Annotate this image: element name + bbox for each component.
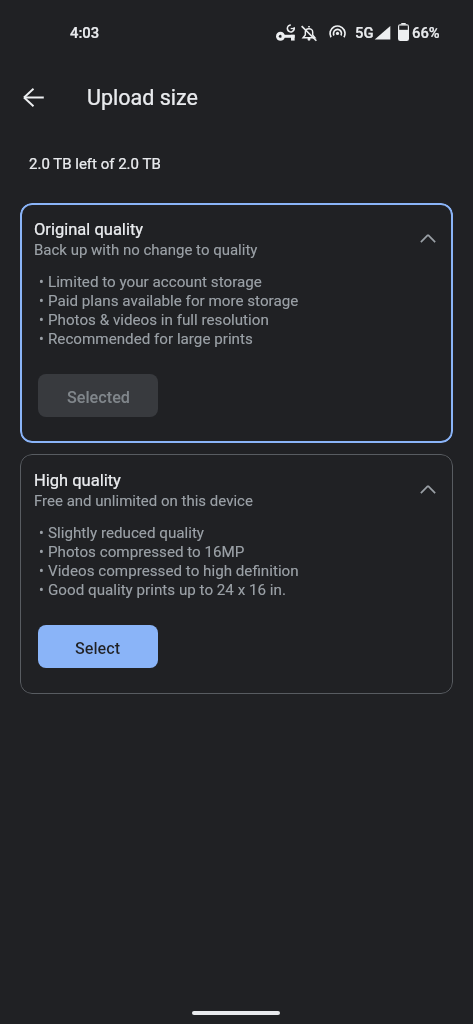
staticText: Photos compressed to 16MP	[48, 543, 245, 561]
staticText: •	[39, 525, 44, 541]
staticText: Videos compressed to high definition	[48, 562, 299, 580]
staticText: Good quality prints up to 24 x 16 in.	[48, 581, 286, 599]
staticText: Paid plans available for more storage	[48, 292, 299, 310]
staticText: Back up with no change to quality	[34, 241, 258, 259]
button[interactable]: Back	[12, 76, 55, 119]
staticText: •	[39, 563, 44, 579]
staticText: Selected	[67, 388, 130, 407]
staticText: 4:03	[70, 24, 100, 41]
staticText: 66%	[412, 24, 440, 41]
staticText: Limited to your account storage	[48, 273, 262, 291]
staticText: Photos & videos in full resolution	[48, 311, 269, 329]
staticText: •	[39, 582, 44, 598]
staticText: •	[39, 312, 44, 328]
staticText: •	[39, 544, 44, 560]
staticText: Recommended for large prints	[48, 330, 253, 348]
staticText: •	[39, 293, 44, 309]
staticText: •	[39, 331, 44, 347]
button[interactable]: Original quality	[20, 203, 453, 443]
staticText: 5G	[355, 24, 374, 41]
staticText: Free and unlimited on this device	[34, 492, 253, 510]
staticText: High quality	[34, 471, 121, 490]
staticText: Upload size	[87, 85, 198, 110]
button[interactable]: Collapse	[412, 473, 444, 505]
staticText: Original quality	[34, 220, 144, 239]
button[interactable]: Selected	[38, 374, 158, 417]
button[interactable]: High quality	[20, 454, 453, 694]
button[interactable]: Select	[38, 625, 158, 668]
staticText: 2.0 TB left of 2.0 TB	[29, 155, 161, 173]
staticText: •	[39, 274, 44, 290]
staticText: Slightly reduced quality	[48, 524, 205, 542]
button[interactable]: Collapse	[412, 222, 444, 254]
staticText: Select	[75, 639, 121, 658]
